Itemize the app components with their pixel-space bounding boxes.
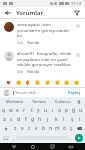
button[interactable]: Beğen	[74, 22, 81, 29]
button[interactable]: ahmet91 fotograflar, elinde ve paylasan …	[0, 48, 85, 77]
button[interactable]: Sil	[75, 124, 84, 133]
staticText: ğ	[72, 107, 76, 114]
staticText: f	[25, 116, 27, 123]
button[interactable]: Kullanıcı	[51, 97, 75, 106]
button[interactable]: Klavyeyi gizle	[66, 143, 76, 150]
button[interactable]: ı	[49, 106, 56, 115]
button[interactable]: x	[19, 124, 26, 133]
staticText: ü	[79, 107, 83, 114]
button[interactable]: Geri	[9, 143, 19, 150]
button[interactable]: r	[21, 106, 28, 115]
button[interactable]: Emoji	[54, 79, 61, 86]
staticText: h	[38, 116, 42, 123]
staticText: ş	[71, 116, 74, 123]
button[interactable]: Emoji	[73, 79, 80, 86]
button[interactable]: s	[8, 115, 15, 124]
button[interactable]: l	[60, 115, 68, 124]
button[interactable]: u	[42, 106, 49, 115]
button[interactable]: c	[26, 124, 33, 133]
button[interactable]: Son uygulamalar	[47, 143, 57, 150]
staticText: 17:14	[71, 1, 82, 6]
staticText: x	[21, 125, 24, 132]
button[interactable]: Merhaba	[2, 97, 27, 106]
staticText: ı	[52, 107, 54, 114]
staticText: y	[37, 107, 40, 114]
button[interactable]: m	[54, 124, 61, 133]
button[interactable]: ,	[11, 134, 16, 142]
button[interactable]: Ana ekran	[28, 143, 38, 150]
button[interactable]: Emoji	[5, 79, 12, 86]
staticText: m	[55, 125, 60, 132]
staticText: Merhaba	[6, 99, 23, 104]
staticText: Yorumlar	[16, 9, 44, 17]
button[interactable]: Emoji	[44, 79, 51, 86]
button[interactable]: Gönder	[73, 134, 84, 142]
staticText: ahmet91 fotograflar, elinde ve paylasan …	[17, 51, 72, 67]
staticText: w	[9, 107, 13, 114]
button[interactable]: g	[29, 115, 36, 124]
button[interactable]: d	[15, 115, 22, 124]
staticText: o	[58, 107, 62, 114]
staticText: ,	[13, 135, 15, 142]
button[interactable]: ü	[77, 106, 84, 115]
button[interactable]: .	[68, 134, 73, 142]
button[interactable]: f	[22, 115, 29, 124]
button[interactable]: b	[40, 124, 47, 133]
button[interactable]: ç	[68, 124, 75, 133]
button[interactable]: w	[7, 106, 14, 115]
staticText: n	[49, 125, 53, 132]
staticText: c	[28, 125, 31, 132]
staticText: 2sa	[17, 40, 23, 45]
button[interactable]: ş	[68, 115, 76, 124]
button[interactable]: sonsuzyaris sizin yorumlarim gelmiyordun…	[0, 19, 85, 48]
button[interactable]: Emoji	[34, 79, 41, 86]
button[interactable]: y	[35, 106, 42, 115]
button[interactable]: Filtrele	[73, 9, 81, 17]
staticText: a	[3, 116, 6, 123]
staticText: b	[42, 125, 46, 132]
button[interactable]: z	[11, 124, 19, 133]
button[interactable]: t	[28, 106, 35, 115]
button[interactable]: j	[44, 115, 52, 124]
button[interactable]: n	[47, 124, 54, 133]
button[interactable]: Paylaş	[67, 90, 82, 95]
button[interactable]: k	[52, 115, 60, 124]
button[interactable]: Tamam	[27, 97, 51, 106]
button[interactable]: a	[1, 115, 8, 124]
staticText: 2sa	[17, 69, 23, 74]
staticText: v	[35, 125, 38, 132]
button[interactable]: e	[14, 106, 21, 115]
staticText: g	[31, 116, 35, 123]
button[interactable]: Emoji	[63, 79, 70, 86]
button[interactable]: Büyük harf	[1, 124, 11, 133]
button[interactable]: ö	[61, 124, 68, 133]
button[interactable]: Beğen	[74, 51, 81, 58]
button[interactable]: Yanıtla	[27, 69, 39, 74]
button[interactable]: Geri	[4, 9, 12, 17]
button[interactable]: v	[33, 124, 40, 133]
staticText: Tamam	[32, 99, 46, 104]
staticText: Kullanıcı	[55, 99, 71, 104]
button[interactable]: Yanıtla	[27, 40, 39, 45]
button[interactable]: Emoji	[24, 79, 31, 86]
staticText: k	[55, 116, 58, 123]
button[interactable]: o	[56, 106, 63, 115]
staticText: s	[10, 116, 13, 123]
staticText: d	[17, 116, 21, 123]
staticText: ö	[63, 125, 67, 132]
button[interactable]: Emoji	[15, 79, 22, 86]
staticText: l	[63, 116, 65, 123]
staticText: e	[16, 107, 19, 114]
staticText: q	[2, 107, 6, 114]
staticText: z	[14, 125, 17, 132]
button[interactable]: Sesle yaz	[75, 97, 83, 106]
button[interactable]: p	[63, 106, 70, 115]
staticText: sonsuzyaris sizin yorumlarim gelmiyordun…	[17, 22, 72, 38]
button[interactable]: h	[36, 115, 44, 124]
button[interactable]: ğ	[70, 106, 77, 115]
button[interactable]: ?123	[1, 134, 11, 142]
staticText: j	[47, 116, 49, 123]
button[interactable]: q	[1, 106, 7, 115]
button[interactable]: i	[76, 115, 84, 124]
